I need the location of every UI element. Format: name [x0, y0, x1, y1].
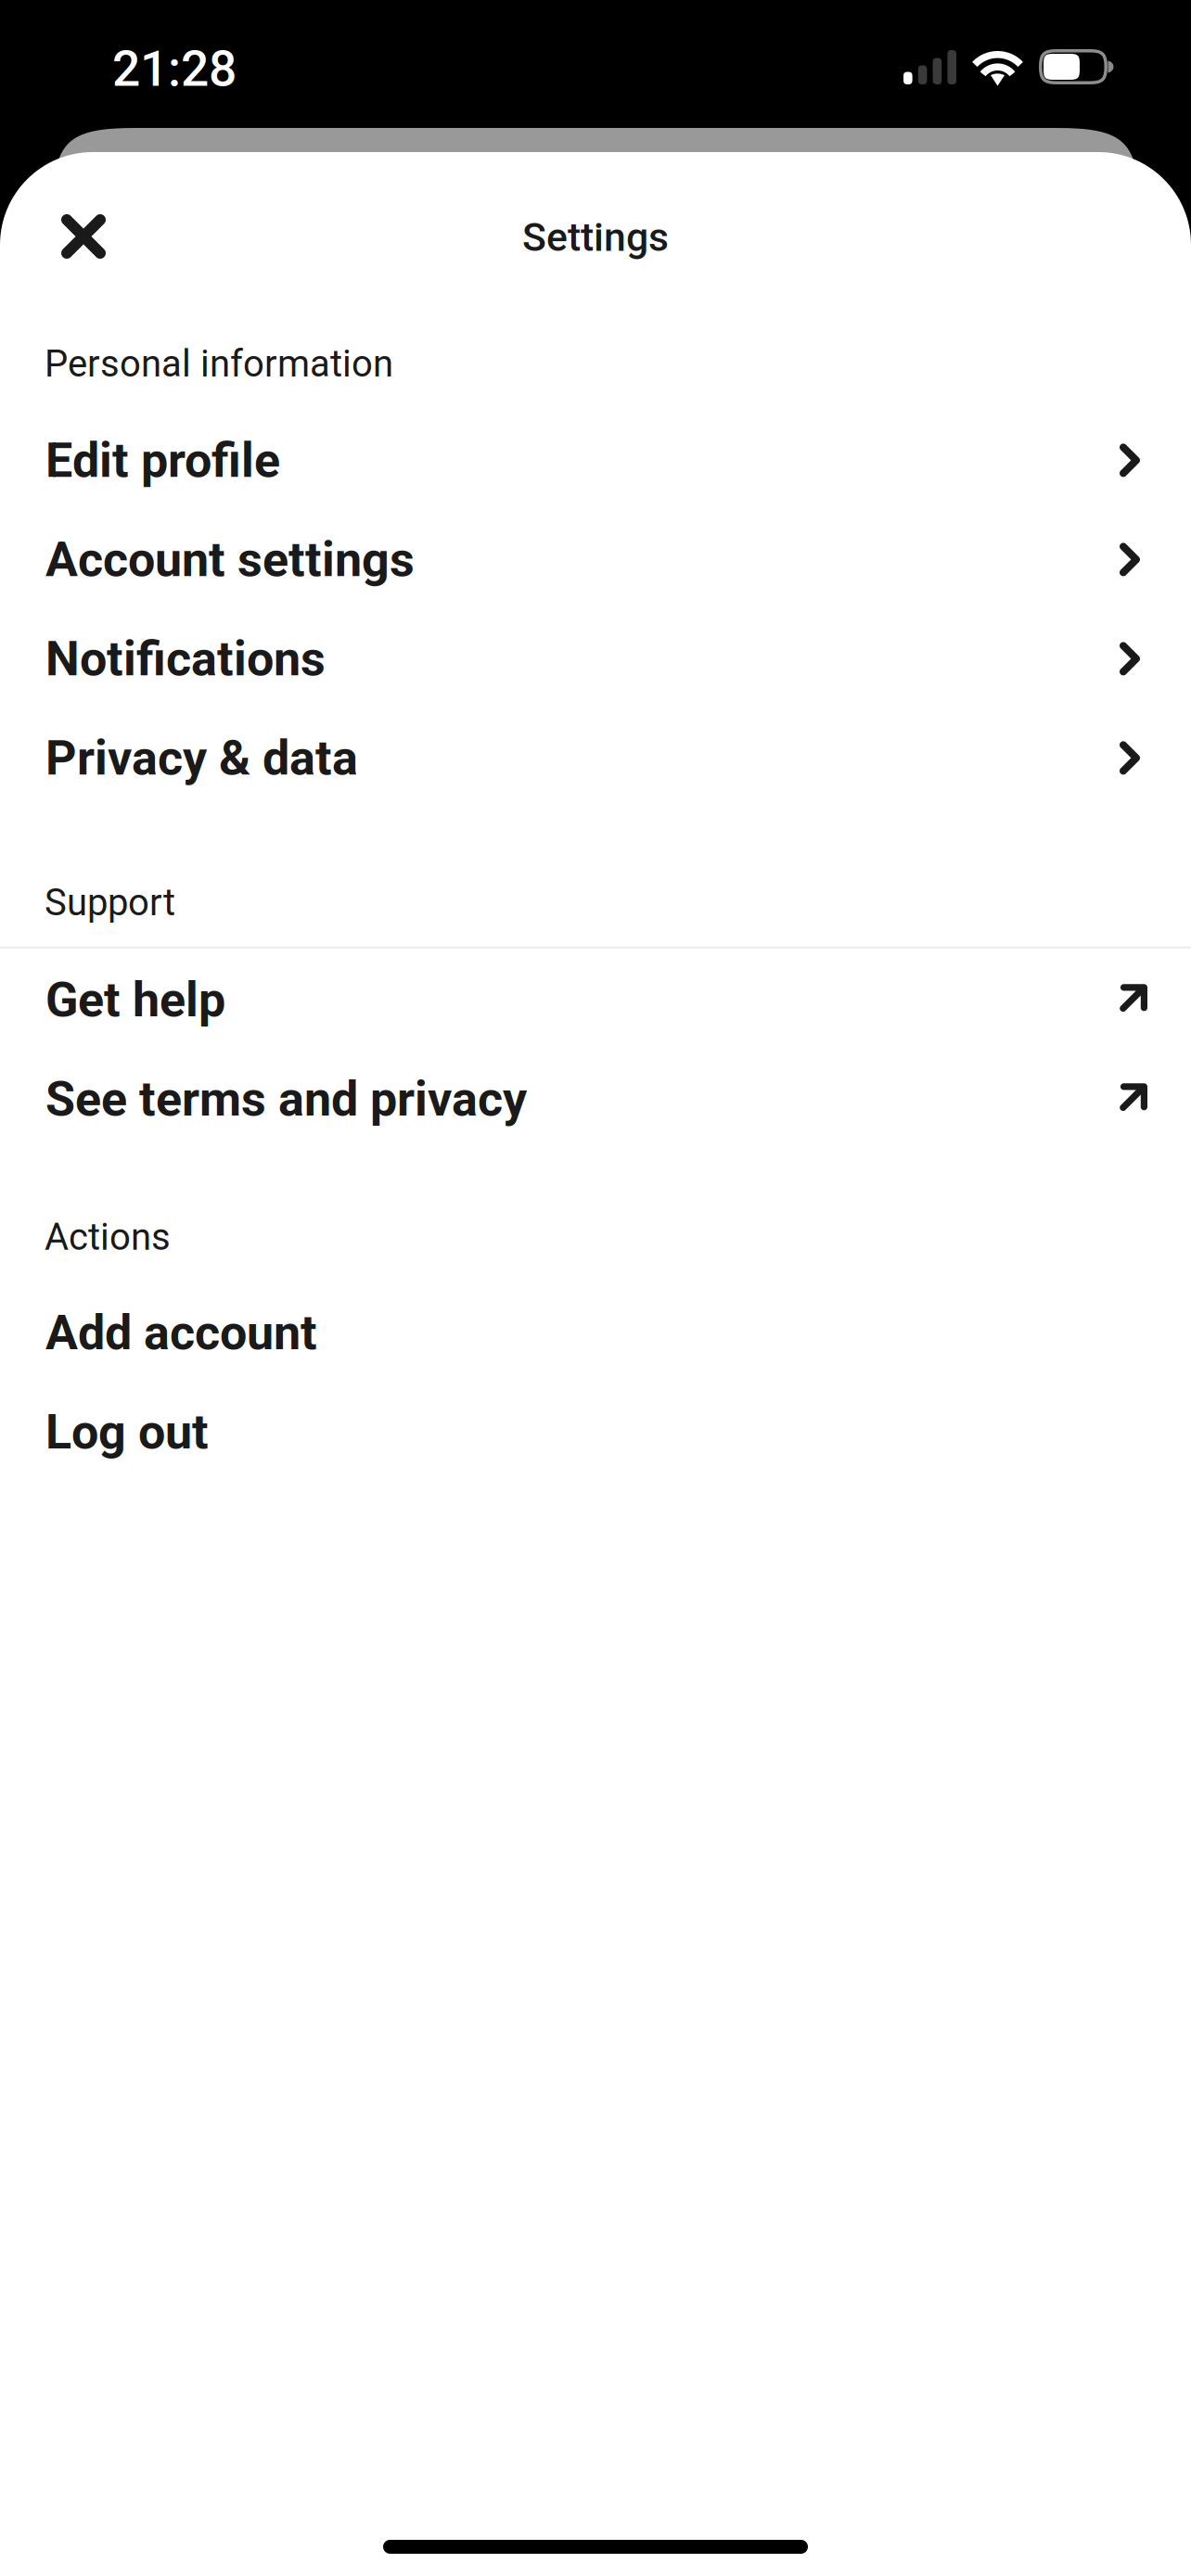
staticText: Settings: [522, 214, 669, 261]
staticText: Support: [45, 881, 175, 924]
button[interactable]: Add account: [0, 1283, 1191, 1382]
staticText: Account settings: [45, 531, 415, 588]
staticText: Get help: [45, 972, 225, 1028]
staticText: Personal information: [45, 342, 393, 386]
staticText: Edit profile: [45, 432, 280, 488]
staticText: Actions: [45, 1215, 171, 1259]
staticText: Notifications: [45, 630, 326, 687]
button[interactable]: Notifications: [0, 609, 1191, 708]
button[interactable]: Privacy & data: [0, 708, 1191, 808]
staticText: Privacy & data: [45, 730, 358, 786]
button[interactable]: Edit profile: [0, 411, 1191, 510]
button[interactable]: See terms and privacy: [0, 1050, 1191, 1149]
button[interactable]: Log out: [0, 1382, 1191, 1481]
button[interactable]: Get help: [0, 950, 1191, 1050]
button[interactable]: Close: [0, 152, 128, 274]
staticText: Log out: [45, 1404, 209, 1460]
button[interactable]: Account settings: [0, 510, 1191, 609]
staticText: 21:28: [112, 40, 237, 98]
staticText: See terms and privacy: [45, 1071, 527, 1127]
staticText: Add account: [45, 1304, 317, 1361]
